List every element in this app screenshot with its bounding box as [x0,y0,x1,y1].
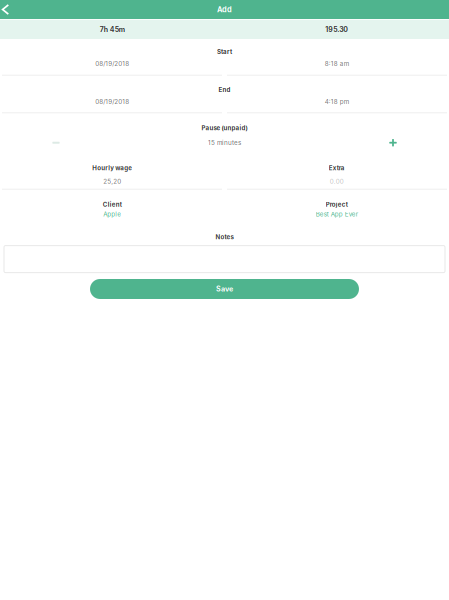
button[interactable]: Hourly wage [0,151,224,188]
staticText: Apple [103,210,121,218]
staticText: 25,20 [103,178,121,185]
button[interactable]: Project [224,190,449,226]
button[interactable]: 4:18 pm [224,76,449,112]
staticText: Best App Ever [316,210,358,218]
staticText: Start [217,48,232,55]
button[interactable]: 8:18 am [224,39,449,74]
staticText: 08/19/2018 [95,60,129,68]
staticText: 4:18 pm [325,98,349,106]
staticText: Pause (unpaid) [201,124,247,132]
staticText: 0.00 [330,178,344,185]
staticText: End [218,86,230,93]
staticText: Notes [215,233,233,241]
staticText: Add [217,5,232,14]
staticText: Extra [329,164,345,172]
staticText: 15 minutes [208,139,241,146]
staticText: Project [326,201,348,208]
button[interactable]: 08/19/2018 [0,39,224,74]
staticText: Client [103,201,122,208]
button[interactable]: Notes [0,246,449,273]
staticText: Hourly wage [92,164,132,172]
staticText: 8:18 am [325,60,349,68]
button[interactable]: Back [0,0,15,19]
button[interactable]: Extra [224,151,449,188]
button[interactable]: Increase pause [381,136,405,150]
staticText: 08/19/2018 [95,98,129,106]
staticText: Save [216,285,233,293]
staticText: 7h 45m [100,25,125,34]
button[interactable]: Decrease pause [44,136,68,150]
staticText: 195.30 [325,25,348,34]
button[interactable]: 08/19/2018 [0,76,224,112]
button[interactable]: Client [0,190,224,226]
button[interactable]: Save [90,279,359,299]
